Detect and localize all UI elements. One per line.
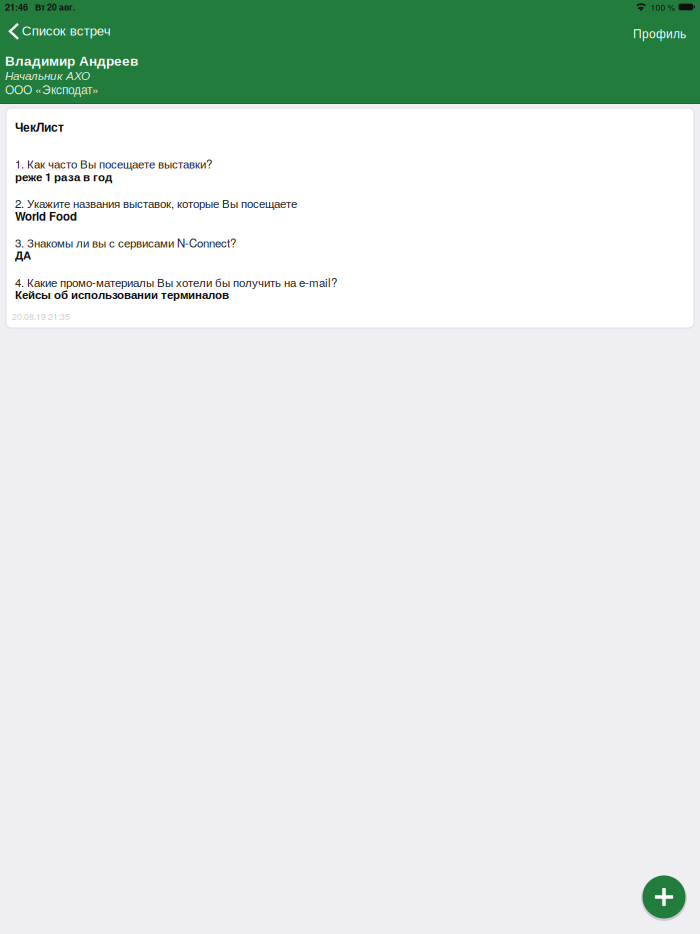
staticText: Список встреч	[22, 23, 111, 38]
staticText: ДА	[15, 249, 31, 262]
staticText: 20.08.19 21:35	[12, 310, 70, 322]
staticText: Профиль	[633, 27, 686, 41]
staticText: ООО «Экcподат»	[5, 80, 99, 98]
staticText: Начальник АХО	[5, 69, 90, 83]
staticText: 1. Как часто Вы посещаете выставки?	[15, 155, 212, 172]
button[interactable]: ЧекЛист	[6, 108, 694, 328]
staticText: 100 %	[651, 1, 676, 13]
staticText: реже 1 раза в год	[15, 168, 112, 185]
staticText: 2. Укажите названия выставок, которые Вы…	[15, 195, 297, 211]
staticText: Владимир Андреев	[5, 53, 138, 69]
staticText: 4. Какие промо-материалы Вы хотели бы по…	[15, 274, 337, 290]
staticText: ЧекЛист	[15, 121, 64, 134]
staticText: World Food	[15, 208, 77, 224]
staticText: 3. Знакомы ли вы с сервисами N-Connect?	[15, 234, 236, 251]
button[interactable]: Профиль	[619, 20, 700, 48]
staticText: Кейсы об использовании терминалов	[15, 289, 229, 301]
button[interactable]: Список встреч	[0, 20, 121, 48]
button[interactable]: Добавить	[640, 873, 687, 920]
staticText: 21:46	[5, 0, 28, 13]
staticText: Вт 20 авг.	[35, 1, 75, 13]
